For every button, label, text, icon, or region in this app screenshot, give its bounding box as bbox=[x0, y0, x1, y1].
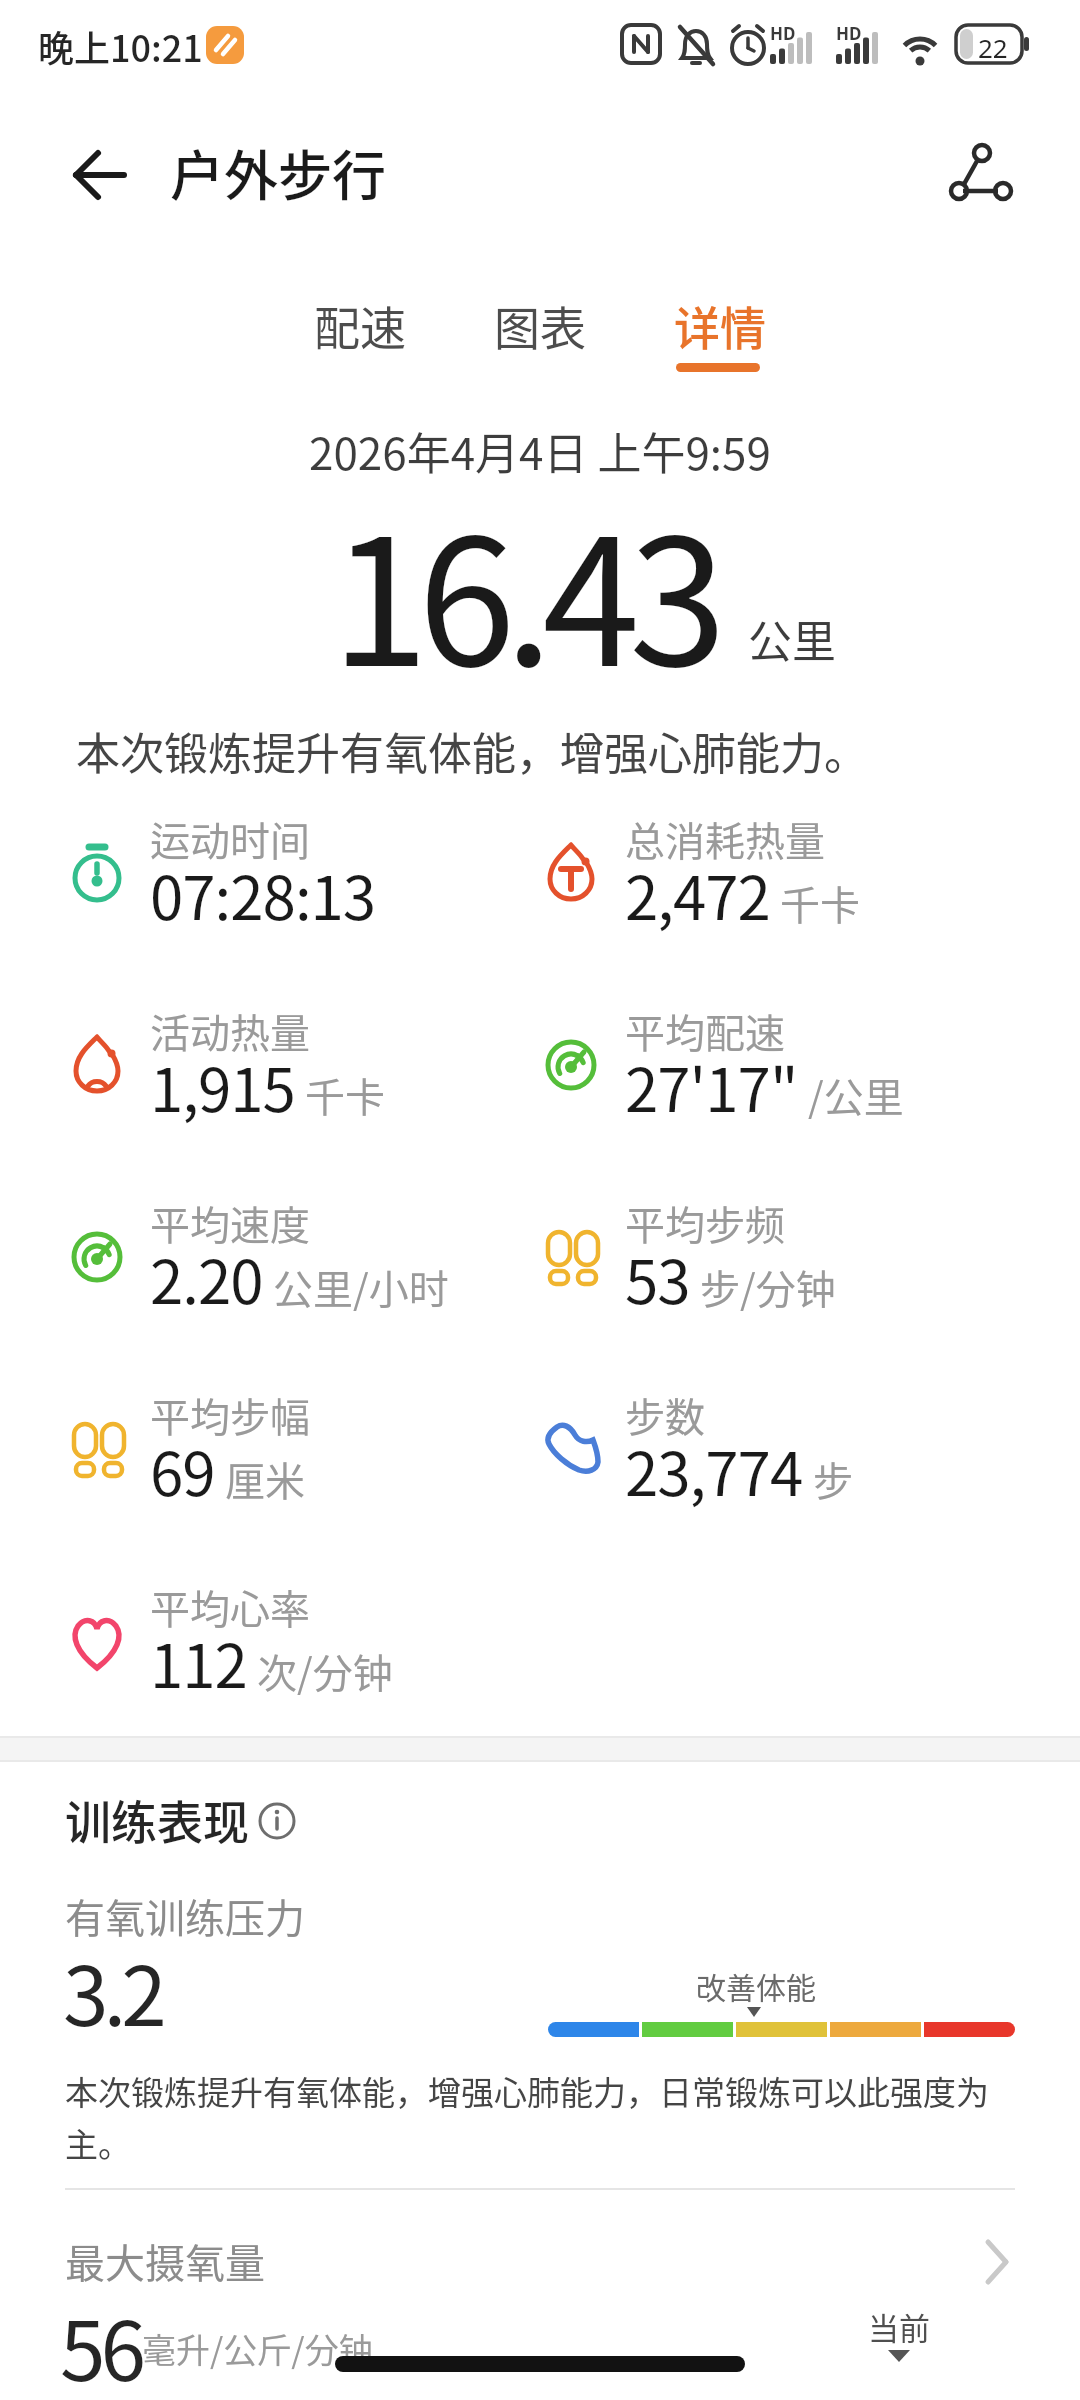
staticText: 厘米 bbox=[225, 1450, 305, 1508]
staticText: 本次锻炼提升有氧体能，增强心肺能力。 bbox=[76, 719, 868, 783]
staticText: 平均配速 bbox=[625, 1002, 785, 1060]
staticText: 晚上10:21 bbox=[38, 20, 203, 72]
staticText: 69 bbox=[150, 1426, 215, 1513]
staticText: 户外步行 bbox=[170, 133, 386, 211]
staticText: 平均步幅 bbox=[150, 1386, 310, 1444]
staticText: /公里 bbox=[808, 1066, 904, 1124]
staticText: 2.20 bbox=[150, 1234, 263, 1321]
staticText: 改善体能 bbox=[696, 1964, 816, 2007]
staticText: 主。 bbox=[65, 2119, 131, 2167]
staticText: 53 bbox=[625, 1234, 690, 1321]
staticText: 07:28:13 bbox=[150, 850, 376, 937]
button[interactable]: 配速 bbox=[295, 285, 425, 365]
staticText: 2026年4月4日 上午9:59 bbox=[309, 419, 771, 483]
staticText: HD bbox=[770, 22, 796, 45]
staticText: 配速 bbox=[314, 292, 406, 359]
staticText: 千卡 bbox=[780, 874, 860, 932]
staticText: 平均步频 bbox=[625, 1194, 785, 1252]
staticText: 总消耗热量 bbox=[625, 810, 825, 868]
staticText: 3.2 bbox=[63, 1931, 162, 2050]
staticText: 56 bbox=[60, 2286, 142, 2400]
staticText: 步/分钟 bbox=[700, 1258, 836, 1316]
button[interactable] bbox=[252, 1796, 302, 1846]
staticText: 活动热量 bbox=[150, 1002, 310, 1060]
button[interactable] bbox=[52, 132, 142, 222]
staticText: 27'17" bbox=[625, 1042, 798, 1129]
staticText: 公里/小时 bbox=[273, 1258, 449, 1316]
staticText: 2,472 bbox=[625, 850, 770, 937]
button[interactable] bbox=[930, 125, 1030, 225]
staticText: 千卡 bbox=[305, 1066, 385, 1124]
staticText: 详情 bbox=[674, 292, 766, 359]
staticText: 1,915 bbox=[150, 1042, 295, 1129]
staticText: 本次锻炼提升有氧体能，增强心肺能力，日常锻炼可以此强度为 bbox=[65, 2067, 989, 2115]
staticText: 22 bbox=[978, 30, 1008, 65]
staticText: 16.43 bbox=[331, 462, 716, 717]
staticText: 步 bbox=[813, 1450, 853, 1508]
staticText: 最大摄氧量 bbox=[65, 2232, 265, 2290]
staticText: 当前 bbox=[868, 2304, 930, 2349]
button[interactable]: 详情 bbox=[655, 285, 785, 365]
button[interactable] bbox=[0, 2220, 1080, 2330]
staticText: 训练表现 bbox=[65, 1786, 249, 1853]
staticText: 平均心率 bbox=[150, 1578, 310, 1636]
staticText: 112 bbox=[150, 1618, 247, 1705]
staticText: 有氧训练压力 bbox=[65, 1887, 305, 1945]
button[interactable]: 图表 bbox=[475, 285, 605, 365]
staticText: 运动时间 bbox=[150, 810, 310, 868]
staticText: 公里 bbox=[748, 607, 836, 671]
staticText: 步数 bbox=[625, 1386, 705, 1444]
staticText: 图表 bbox=[494, 292, 586, 359]
staticText: 23,774 bbox=[625, 1426, 803, 1513]
staticText: 平均速度 bbox=[150, 1194, 310, 1252]
staticText: 毫升/公斤/分钟 bbox=[142, 2324, 373, 2373]
staticText: HD bbox=[836, 22, 862, 45]
staticText: 次/分钟 bbox=[257, 1642, 393, 1700]
